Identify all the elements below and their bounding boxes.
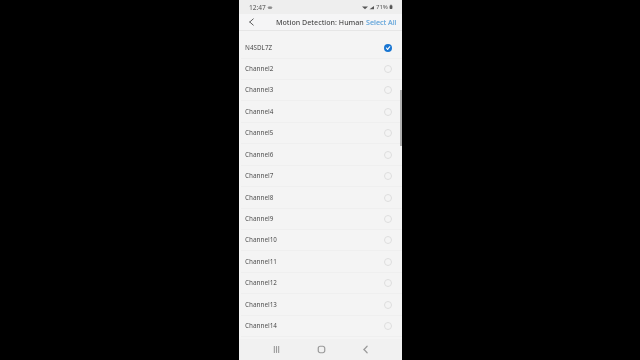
staticText: Motion Detection: Human bbox=[276, 17, 364, 27]
staticText: Channel8 bbox=[245, 193, 274, 202]
button[interactable]: Channel14 bbox=[239, 315, 402, 336]
staticText: Channel3 bbox=[245, 85, 274, 94]
staticText: Channel13 bbox=[245, 300, 277, 309]
staticText: Select All bbox=[366, 17, 397, 27]
button[interactable]: Channel4 bbox=[239, 101, 402, 122]
staticText: Channel7 bbox=[245, 171, 274, 180]
button[interactable]: Channel7 bbox=[239, 165, 402, 186]
button[interactable]: Channel3 bbox=[239, 79, 402, 100]
button[interactable]: Channel10 bbox=[239, 229, 402, 250]
staticText: Channel14 bbox=[245, 321, 277, 330]
button[interactable]: Channel11 bbox=[239, 251, 402, 272]
button[interactable]: Channel6 bbox=[239, 144, 402, 165]
button[interactable]: Channel8 bbox=[239, 187, 402, 208]
button[interactable]: Channel12 bbox=[239, 272, 402, 293]
staticText: Channel2 bbox=[245, 64, 274, 73]
staticText: 12:47 bbox=[249, 3, 266, 12]
button[interactable]: Channel9 bbox=[239, 208, 402, 229]
staticText: Channel4 bbox=[245, 107, 274, 116]
staticText: Channel9 bbox=[245, 214, 274, 223]
staticText: Channel5 bbox=[245, 128, 274, 137]
button[interactable]: N4SDL7Z bbox=[239, 37, 402, 58]
button[interactable]: Home bbox=[310, 339, 332, 360]
staticText: Channel6 bbox=[245, 150, 274, 159]
staticText: Channel10 bbox=[245, 235, 277, 244]
button[interactable]: Select All bbox=[366, 17, 397, 27]
button[interactable]: Channel13 bbox=[239, 294, 402, 315]
button[interactable]: Channel2 bbox=[239, 58, 402, 79]
staticText: N4SDL7Z bbox=[245, 43, 273, 52]
button[interactable]: Channel5 bbox=[239, 122, 402, 143]
staticText: Channel11 bbox=[245, 257, 277, 266]
staticText: 71% bbox=[376, 3, 388, 11]
button[interactable]: Recent apps bbox=[265, 339, 287, 360]
button[interactable]: Navigate up bbox=[244, 14, 260, 30]
staticText: Channel12 bbox=[245, 278, 277, 287]
button[interactable]: Back bbox=[354, 339, 376, 360]
